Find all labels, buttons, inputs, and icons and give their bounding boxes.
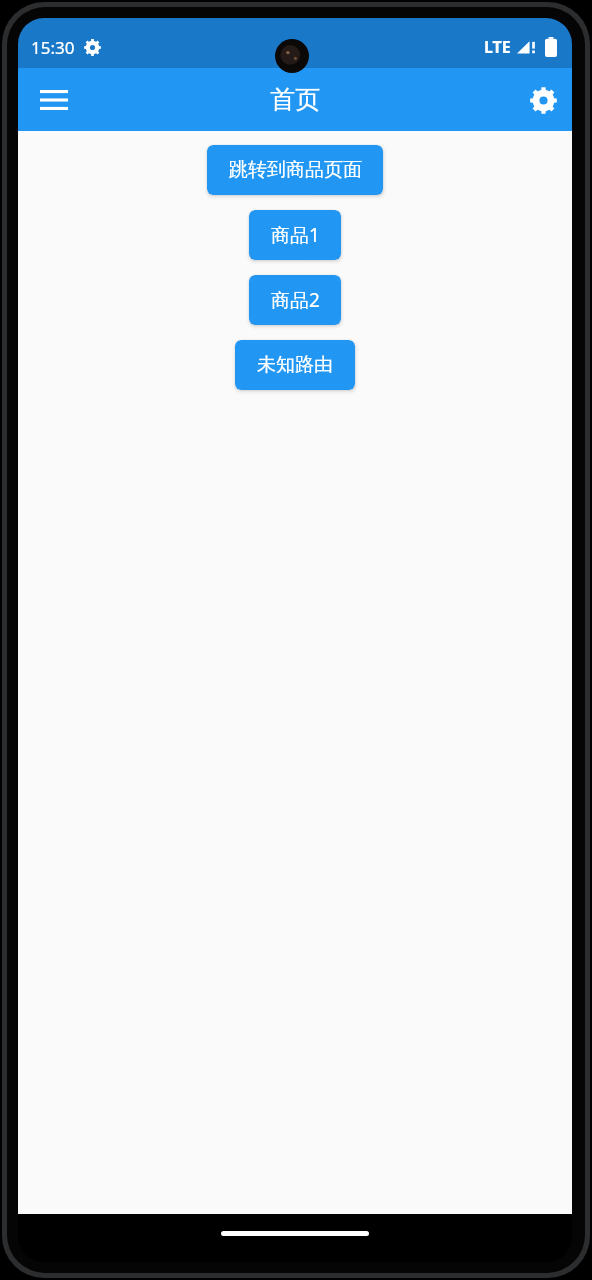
button[interactable]: 跳转到商品页面 xyxy=(207,145,383,195)
staticText: 未知路由 xyxy=(257,353,333,377)
staticText: LTE xyxy=(484,36,511,58)
staticText: 首页 xyxy=(270,84,320,115)
button[interactable]: 商品2 xyxy=(249,275,341,325)
staticText: 商品2 xyxy=(271,287,320,313)
staticText: 商品1 xyxy=(271,222,320,248)
button[interactable]: 商品1 xyxy=(249,210,341,260)
button[interactable]: 未知路由 xyxy=(235,340,355,390)
staticText: 跳转到商品页面 xyxy=(229,158,362,182)
button[interactable]: Menu xyxy=(30,76,78,124)
button[interactable]: Settings xyxy=(519,76,567,124)
staticText: 15:30 xyxy=(31,36,75,59)
